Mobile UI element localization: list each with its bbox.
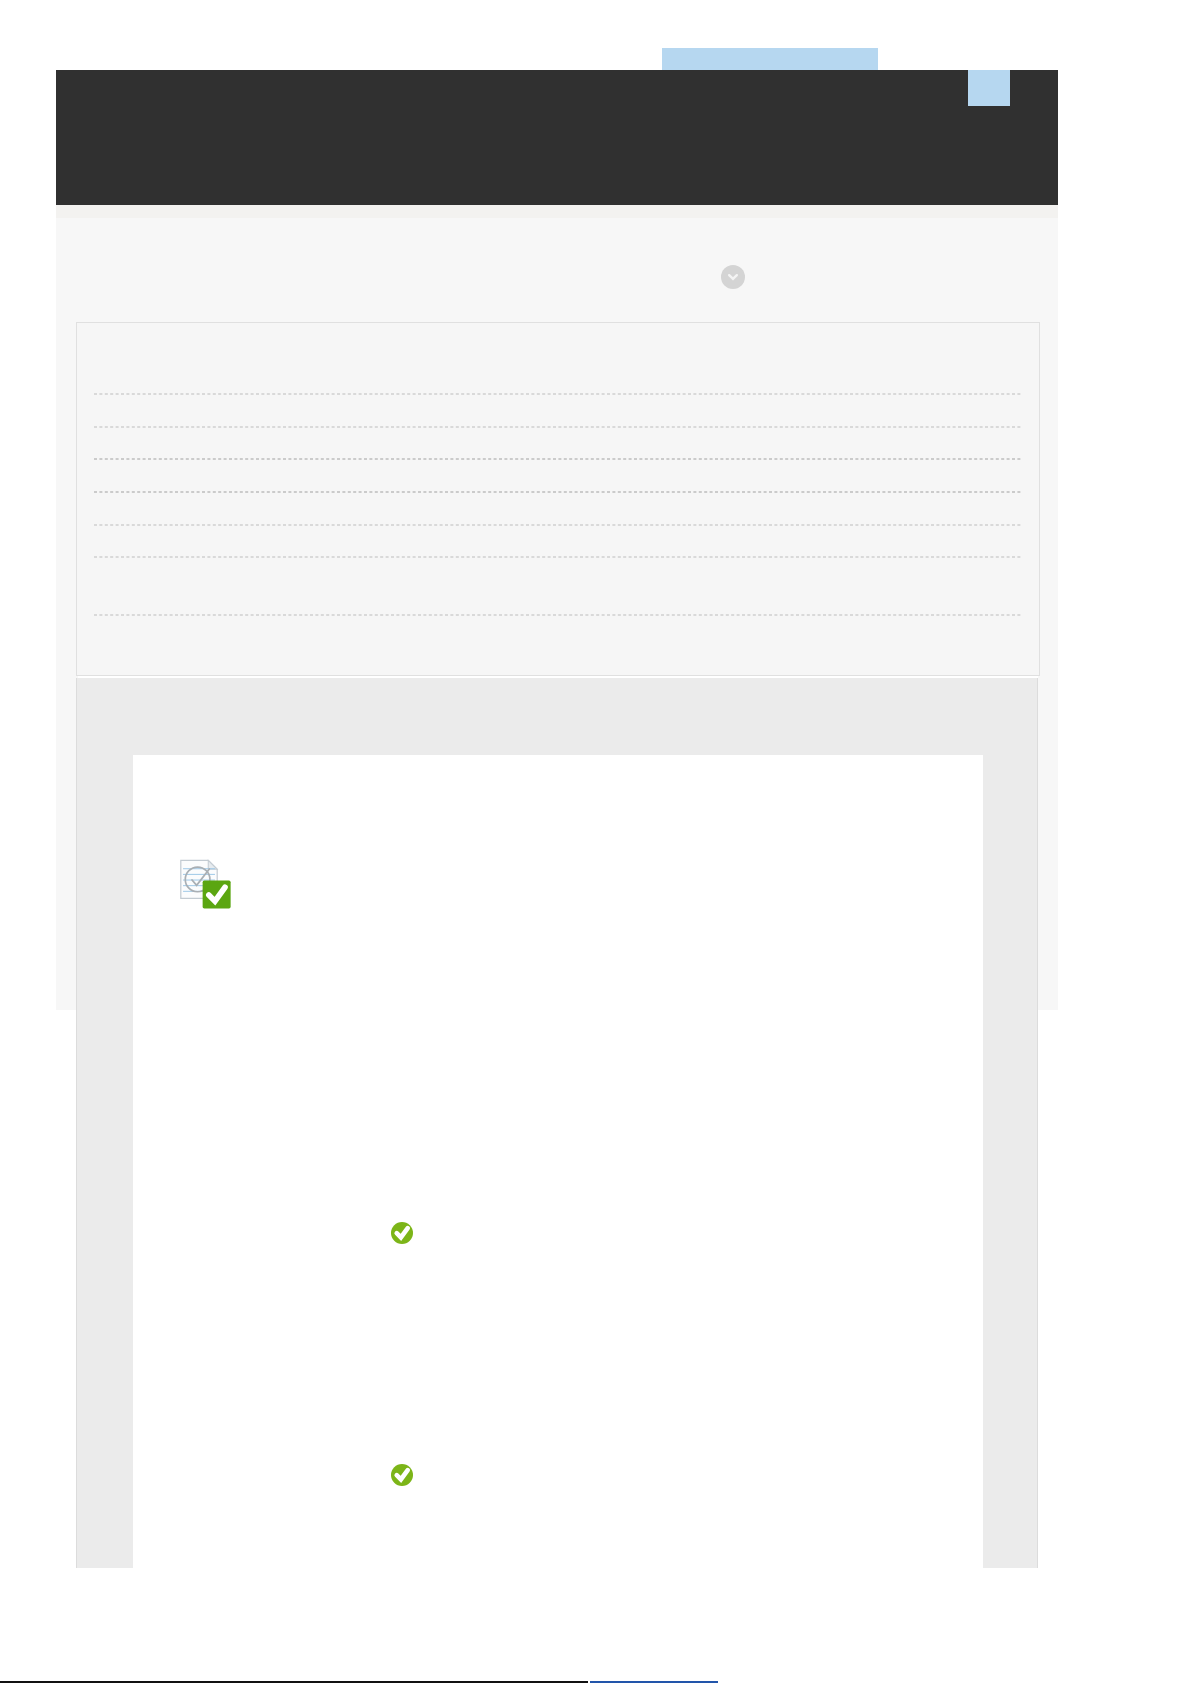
button[interactable] [76, 322, 1040, 676]
button[interactable]: Completed document [133, 755, 983, 1568]
button[interactable]: Completed document [178, 857, 234, 913]
button[interactable]: Done [391, 1222, 413, 1244]
button[interactable]: Done [391, 1464, 413, 1486]
button[interactable] [662, 48, 878, 71]
button[interactable]: Expand [721, 265, 745, 289]
